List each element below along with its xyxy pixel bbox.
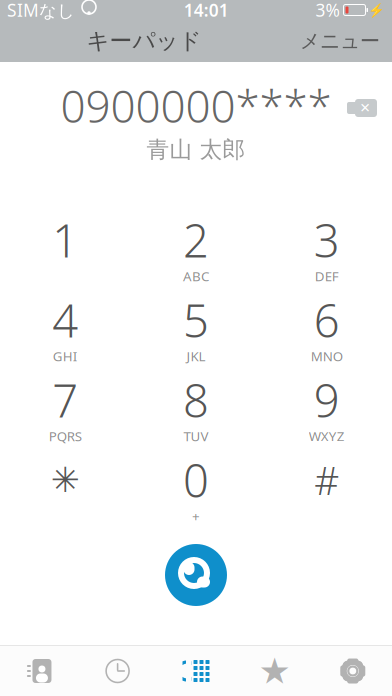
- button[interactable]: 履歴: [78, 646, 157, 695]
- staticText: 0900000****: [60, 76, 331, 135]
- button[interactable]: 4: [0, 286, 131, 366]
- staticText: 6: [314, 290, 340, 350]
- staticText: MNO: [311, 347, 343, 365]
- button[interactable]: 5: [131, 286, 261, 366]
- button[interactable]: 設定: [314, 646, 392, 695]
- staticText: 4: [52, 290, 78, 350]
- button[interactable]: 削除: [332, 84, 392, 132]
- button[interactable]: お気に入り: [235, 646, 314, 695]
- staticText: 0: [183, 450, 209, 510]
- staticText: 8: [183, 370, 209, 430]
- staticText: +: [192, 507, 200, 525]
- button[interactable]: 発信: [159, 538, 233, 612]
- staticText: 1: [52, 210, 78, 270]
- staticText: 7: [52, 370, 78, 430]
- staticText: 青山 太郎: [146, 136, 245, 164]
- staticText: ABC: [183, 267, 209, 285]
- button[interactable]: 8: [131, 366, 261, 446]
- staticText: 9: [314, 370, 340, 430]
- staticText: #: [314, 454, 339, 506]
- staticText: メニュー: [300, 29, 380, 53]
- staticText: DEF: [315, 267, 339, 285]
- staticText: GHI: [53, 347, 78, 365]
- staticText: ✕: [359, 100, 370, 115]
- button[interactable]: 0: [131, 446, 261, 526]
- staticText: 14:01: [184, 0, 229, 21]
- staticText: 5: [183, 290, 209, 350]
- staticText: SIMなし: [7, 0, 75, 21]
- staticText: ✳: [51, 460, 80, 500]
- staticText: 3: [314, 210, 340, 270]
- button[interactable]: 2: [131, 206, 261, 286]
- button[interactable]: 7: [0, 366, 131, 446]
- button[interactable]: ✳: [0, 446, 131, 526]
- button[interactable]: メニュー: [288, 20, 392, 62]
- staticText: 2: [183, 210, 209, 270]
- staticText: TUV: [183, 427, 208, 445]
- staticText: 3%: [315, 0, 339, 21]
- staticText: WXYZ: [309, 427, 345, 445]
- button[interactable]: #: [261, 446, 392, 526]
- staticText: ★: [258, 651, 290, 691]
- staticText: ⚡: [368, 2, 385, 18]
- staticText: JKL: [186, 347, 205, 365]
- staticText: キーパッド: [86, 27, 201, 55]
- button[interactable]: 9: [261, 366, 392, 446]
- button[interactable]: 3: [261, 206, 392, 286]
- button[interactable]: キーパッド: [157, 646, 235, 695]
- button[interactable]: 6: [261, 286, 392, 366]
- button[interactable]: 連絡先: [0, 646, 78, 695]
- staticText: PQRS: [49, 427, 82, 445]
- button[interactable]: 1: [0, 206, 131, 286]
